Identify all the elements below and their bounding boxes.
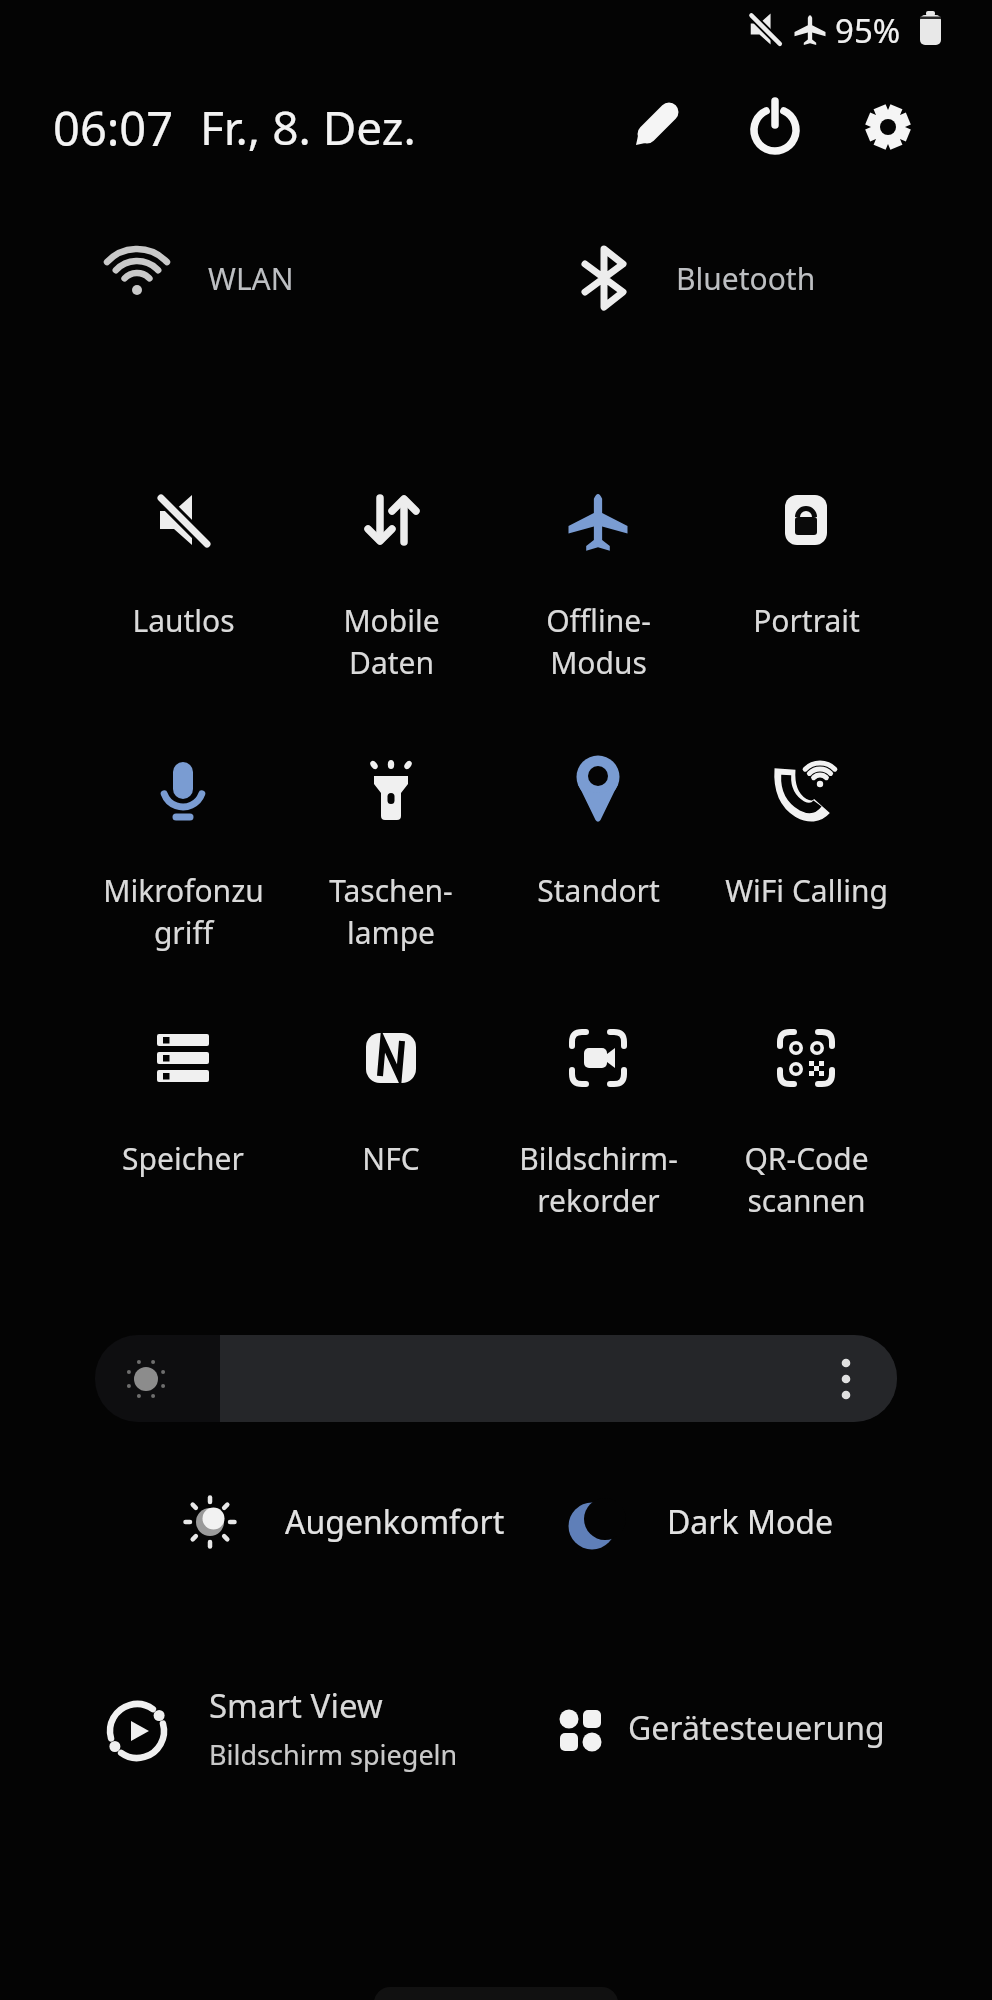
- staticText: Portrait: [753, 600, 860, 641]
- button[interactable]: [848, 91, 928, 163]
- staticText: WiFi Calling: [725, 870, 888, 911]
- staticText: Speicher: [122, 1138, 244, 1179]
- staticText: 95%: [835, 8, 901, 50]
- button[interactable]: NFC: [291, 1008, 491, 1179]
- staticText: Dark Mode: [667, 1500, 834, 1544]
- staticText: Taschen- lampe: [329, 870, 453, 953]
- staticText: Smart View: [209, 1683, 383, 1728]
- staticText: Fr., 8. Dez.: [200, 96, 416, 158]
- button[interactable]: Dark Mode: [560, 1492, 890, 1552]
- staticText: Offline- Modus: [546, 600, 651, 683]
- staticText: Bildschirm- rekorder: [519, 1138, 678, 1221]
- button[interactable]: [95, 1335, 897, 1422]
- button[interactable]: Mikrofonzu griff: [83, 740, 283, 953]
- button[interactable]: Portrait: [706, 470, 906, 641]
- staticText: Lautlos: [132, 600, 235, 641]
- staticText: Augenkomfort: [285, 1500, 505, 1544]
- button[interactable]: Offline- Modus: [498, 470, 698, 683]
- button[interactable]: Smart View: [100, 1680, 480, 1775]
- staticText: Gerätesteuerung: [628, 1706, 885, 1750]
- button[interactable]: Bildschirm- rekorder: [498, 1008, 698, 1221]
- button[interactable]: [540, 228, 920, 328]
- staticText: WLAN: [208, 258, 294, 299]
- staticText: NFC: [362, 1138, 420, 1179]
- button[interactable]: [60, 228, 440, 328]
- staticText: Bluetooth: [676, 258, 816, 299]
- staticText: QR-Code scannen: [744, 1138, 869, 1221]
- button[interactable]: QR-Code scannen: [706, 1008, 906, 1221]
- staticText: 06:07: [53, 96, 174, 158]
- button[interactable]: Standort: [498, 740, 698, 911]
- staticText: Bildschirm spiegeln: [209, 1736, 458, 1773]
- button[interactable]: Lautlos: [83, 470, 283, 641]
- button[interactable]: Augenkomfort: [180, 1492, 570, 1552]
- staticText: Mikrofonzu griff: [103, 870, 264, 953]
- button[interactable]: WiFi Calling: [706, 740, 906, 911]
- staticText: Standort: [537, 870, 660, 911]
- button[interactable]: Speicher: [83, 1008, 283, 1179]
- button[interactable]: Gerätesteuerung: [550, 1690, 930, 1765]
- button[interactable]: [620, 91, 700, 163]
- button[interactable]: Taschen- lampe: [291, 740, 491, 953]
- staticText: Mobile Daten: [343, 600, 440, 683]
- button[interactable]: [735, 91, 815, 163]
- button[interactable]: Mobile Daten: [291, 470, 491, 683]
